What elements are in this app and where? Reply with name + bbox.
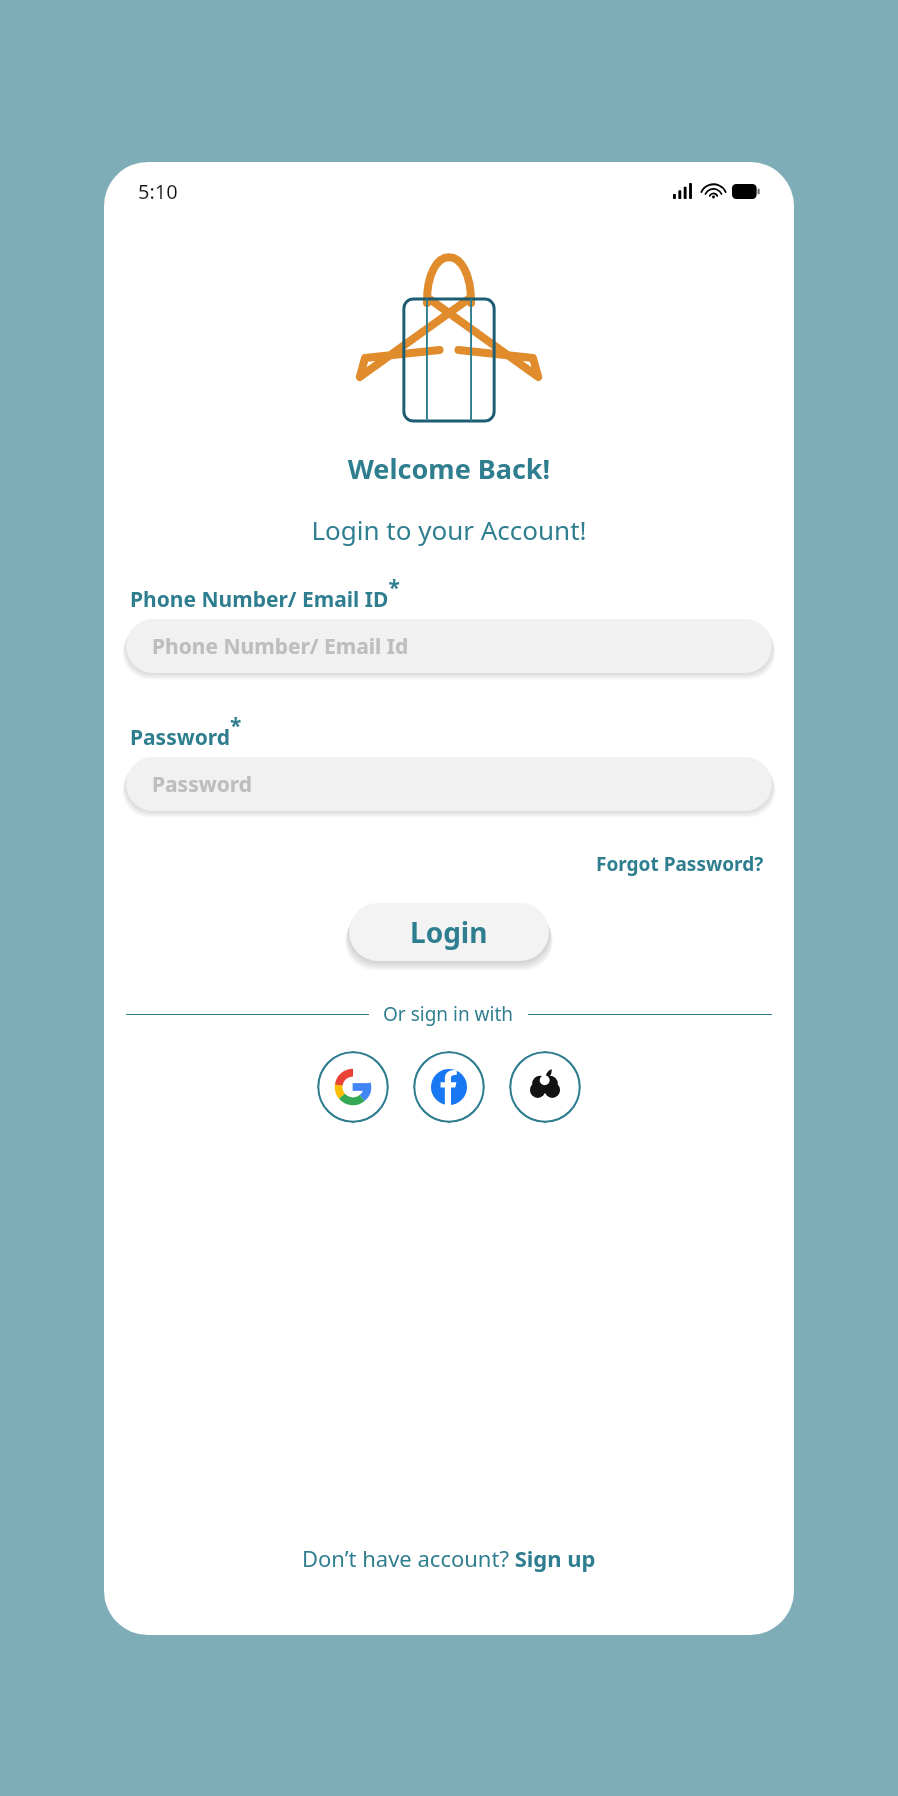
button[interactable]: Password <box>126 757 772 811</box>
button[interactable]: Sign in with Apple <box>509 1051 581 1123</box>
staticText: Welcome Back! <box>104 450 794 487</box>
staticText: 5:10 <box>138 178 178 205</box>
button[interactable]: Forgot Password? <box>592 847 768 881</box>
button[interactable]: Sign in with Google <box>317 1051 389 1123</box>
button[interactable]: Login <box>349 903 549 961</box>
staticText: Phone Number/ Email ID* <box>130 573 400 613</box>
staticText: Or sign in with <box>383 1001 514 1027</box>
staticText: Forgot Password? <box>596 851 764 877</box>
button[interactable]: Sign in with Facebook <box>413 1051 485 1123</box>
staticText: Don’t have account? Sign up <box>302 1543 596 1573</box>
staticText: Login <box>410 913 488 951</box>
staticText: Password* <box>130 711 242 751</box>
button[interactable]: Phone Number/ Email Id <box>126 619 772 673</box>
staticText: Login to your Account! <box>104 512 794 547</box>
staticText: Phone Number/ Email Id <box>152 632 409 661</box>
staticText: Password <box>152 770 253 799</box>
button[interactable]: Don’t have account? Sign up <box>104 1537 794 1579</box>
